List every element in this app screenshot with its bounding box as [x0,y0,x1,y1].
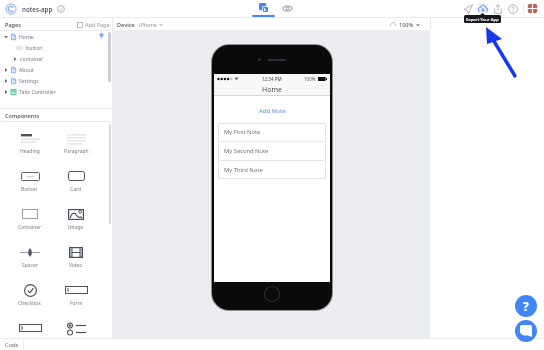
button[interactable]: Input [0,314,59,338]
staticText: Add Page [85,21,110,28]
button[interactable]: My Third Note [218,161,326,179]
staticText: My Second Note [224,147,269,155]
button[interactable]: Image [59,200,93,238]
staticText: Heading [20,148,40,155]
button[interactable]: Code [0,339,23,350]
button[interactable]: iPhone [139,21,163,28]
staticText: ? [523,298,529,314]
staticText: iPhone [139,21,157,28]
button[interactable]: Open chat [515,320,537,342]
staticText: container [20,55,44,62]
staticText: 100% [399,21,414,28]
staticText: Home [19,33,34,40]
staticText: Card [70,186,82,193]
button[interactable]: Video [59,238,93,276]
button[interactable]: Export your app [475,1,490,16]
staticText: Add Note [259,107,286,115]
staticText: Button [21,186,38,193]
button[interactable]: Export Your App [464,15,501,23]
button[interactable]: Help [505,1,520,16]
staticText: Device [117,21,135,28]
staticText: Checkbox [18,300,41,307]
button[interactable]: Card [59,162,93,200]
button[interactable]: Form [59,276,93,314]
button[interactable]: Tabs Controller [0,86,112,97]
button[interactable]: Share [490,1,505,16]
button[interactable]: button [0,42,112,53]
staticText: Tabs Controller [19,88,56,95]
button[interactable]: My Second Note [218,142,326,160]
button[interactable]: Checkbox [0,276,59,314]
button[interactable]: Preview mode [276,0,298,17]
staticText: About [19,66,34,73]
button[interactable]: Button [0,162,59,200]
staticText: My Third Note [224,166,263,174]
staticText: Settings [19,77,39,84]
button[interactable]: About [0,64,112,75]
staticText: 100% [304,76,316,82]
button[interactable]: 100% [390,21,420,28]
staticText: Spacer [22,262,38,269]
button[interactable]: Home [0,31,112,42]
staticText: Paragraph [64,148,89,155]
button[interactable]: Help [515,295,537,317]
staticText: button [26,44,43,51]
button[interactable]: container [0,53,112,64]
button[interactable]: Radio [59,314,93,338]
button[interactable]: My First Note [218,123,326,141]
button[interactable]: Publish [460,1,475,16]
staticText: Pages [5,21,21,28]
staticText: Components [5,112,40,119]
staticText: Video [69,262,83,269]
staticText: My First Note [224,128,261,136]
button[interactable]: Design mode [250,0,276,17]
staticText: 12:34 PM [262,76,282,82]
button[interactable]: Settings [0,75,112,86]
staticText: Form [70,300,83,307]
button[interactable]: Container [0,200,59,238]
staticText: Home [262,85,282,95]
button[interactable]: Add Page [77,21,110,28]
button[interactable]: Paragraph [59,124,93,162]
staticText: Code [5,341,19,348]
staticText: Export Your App [466,16,499,22]
button[interactable]: Add Note [214,104,330,118]
staticText: Image [68,224,84,231]
button[interactable]: Heading [0,124,59,162]
staticText: notes-app [22,5,53,13]
staticText: Container [18,224,42,231]
button[interactable]: Spacer [0,238,59,276]
